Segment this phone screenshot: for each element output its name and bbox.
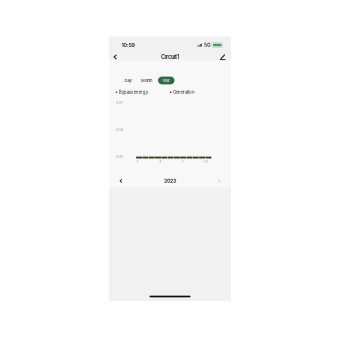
button[interactable]: Previous year: [115, 175, 126, 186]
staticText: 0.07: [116, 100, 123, 105]
button[interactable]: Month: [139, 76, 154, 84]
button[interactable]: Next year: [213, 175, 224, 186]
staticText: 0.04: [116, 127, 123, 132]
staticText: Month: [141, 78, 152, 83]
staticText: 2023: [164, 178, 176, 184]
staticText: 0.00: [116, 154, 123, 159]
staticText: Day: [124, 78, 131, 83]
staticText: 1: [136, 159, 138, 164]
staticText: 10: [203, 159, 207, 164]
staticText: 10:59: [121, 42, 134, 48]
staticText: Bypass: [119, 90, 133, 95]
staticText: 5G: [204, 42, 210, 48]
staticText: Year: [162, 78, 170, 83]
staticText: 4: [159, 159, 161, 164]
button[interactable]: Day: [122, 76, 134, 84]
button[interactable]: Back: [109, 51, 121, 62]
staticText: Circuit1: [161, 54, 179, 60]
button[interactable]: Year: [158, 77, 174, 84]
staticText: Generation: [173, 90, 195, 95]
button[interactable]: Edit: [216, 51, 229, 62]
staticText: 7: [181, 159, 183, 164]
staticText: energy: [134, 90, 148, 95]
